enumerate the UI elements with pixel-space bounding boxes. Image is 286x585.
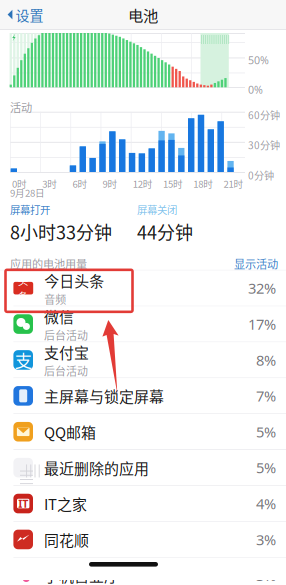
staticText: 12时 (133, 176, 153, 190)
staticText: 设置 (15, 5, 43, 25)
staticText: 21时 (223, 176, 243, 190)
staticText: IT (18, 496, 28, 511)
button[interactable]: 头条 (0, 270, 286, 306)
staticText: 17% (248, 314, 276, 334)
staticText: 0分钟 (248, 168, 274, 182)
staticText: 应用的电池用量 (10, 255, 87, 272)
staticText: 32% (248, 278, 276, 298)
staticText: 30分钟 (248, 138, 280, 152)
staticText: 屏幕打开 (10, 202, 50, 217)
button[interactable]: 设置 (0, 0, 50, 29)
staticText: 18时 (193, 176, 213, 190)
staticText: QQ邮箱 (44, 421, 96, 442)
staticText: IT之家 (44, 493, 87, 514)
button[interactable]: 手机营业厅 (0, 558, 286, 585)
staticText: 微信 (44, 305, 74, 327)
staticText: 电池 (128, 4, 158, 26)
staticText: 0时 (12, 176, 27, 190)
staticText: 显示活动 (234, 255, 278, 272)
staticText: 音频 (44, 291, 66, 307)
staticText: 8% (256, 350, 276, 370)
staticText: 主屏幕与锁定屏幕 (44, 385, 164, 407)
staticText: 同花顺 (44, 529, 89, 550)
button[interactable]: 微信 (0, 306, 286, 342)
staticText: 支付宝 (44, 341, 89, 363)
staticText: 8小时33分钟 (10, 219, 112, 245)
staticText: 3时 (42, 176, 57, 190)
staticText: 9时 (103, 176, 118, 190)
staticText: 活动 (10, 99, 32, 115)
button[interactable]: 支 (0, 342, 286, 378)
button[interactable]: 显示活动 (230, 255, 282, 272)
staticText: 3% (256, 530, 276, 549)
staticText: 后台活动 (44, 363, 88, 379)
staticText: 44分钟 (137, 219, 193, 245)
staticText: 头条 (18, 273, 29, 304)
staticText: 50% (248, 53, 269, 67)
staticText: 最近删除的应用 (44, 457, 149, 478)
staticText: 5% (256, 422, 276, 441)
staticText: 0% (248, 82, 263, 97)
staticText: 7% (256, 386, 276, 406)
staticText: 3% (256, 566, 276, 585)
staticText: 15时 (163, 176, 183, 190)
button[interactable]: 同花顺 (0, 522, 286, 557)
staticText: 60分钟 (248, 107, 280, 122)
staticText: 5% (256, 458, 276, 477)
button[interactable]: QQ邮箱 (0, 414, 286, 449)
staticText: 后台活动 (44, 327, 88, 343)
staticText: 今日头条 (44, 269, 104, 291)
staticText: 4% (256, 494, 276, 513)
staticText: 支 (15, 347, 32, 372)
button[interactable]: 最近删除的应用 (0, 450, 286, 485)
staticText: 6时 (72, 176, 87, 190)
staticText: 屏幕关闭 (137, 202, 177, 217)
button[interactable]: 主屏幕与锁定屏幕 (0, 378, 286, 413)
staticText: 手机营业厅 (44, 564, 119, 585)
staticText: 9月28日 (10, 185, 45, 199)
button[interactable]: IT (0, 486, 286, 521)
